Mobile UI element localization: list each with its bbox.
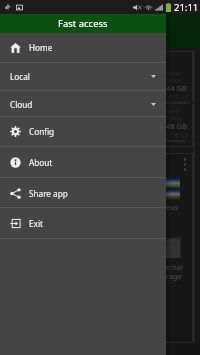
staticText: Local: [10, 71, 30, 82]
staticText: 48 GB: [166, 121, 187, 131]
staticText: 44 GB: [166, 83, 187, 93]
staticText: Config: [29, 126, 55, 137]
staticText: Videos: [155, 202, 179, 212]
staticText: of 98 GB: [166, 93, 188, 100]
button[interactable]: Share app: [0, 178, 166, 208]
staticText: Used space: [166, 107, 193, 121]
button[interactable]: Config: [0, 117, 166, 146]
staticText: Cloud: [10, 99, 33, 110]
staticText: 21:11: [174, 1, 199, 14]
staticText: Used space: [166, 69, 193, 83]
button[interactable]: Home: [0, 32, 166, 62]
staticText: of 98 GB: [166, 131, 188, 138]
button[interactable]: Exit: [0, 208, 166, 238]
staticText: Fast access: [58, 17, 108, 30]
staticText: Share app: [29, 188, 68, 199]
button[interactable]: Cloud: [0, 91, 166, 117]
staticText: Internal storage: [155, 262, 183, 281]
staticText: Exit: [29, 218, 43, 229]
button[interactable]: About: [0, 147, 166, 177]
staticText: About: [29, 157, 53, 168]
button[interactable]: Local: [0, 63, 166, 90]
staticText: Home: [29, 42, 53, 53]
